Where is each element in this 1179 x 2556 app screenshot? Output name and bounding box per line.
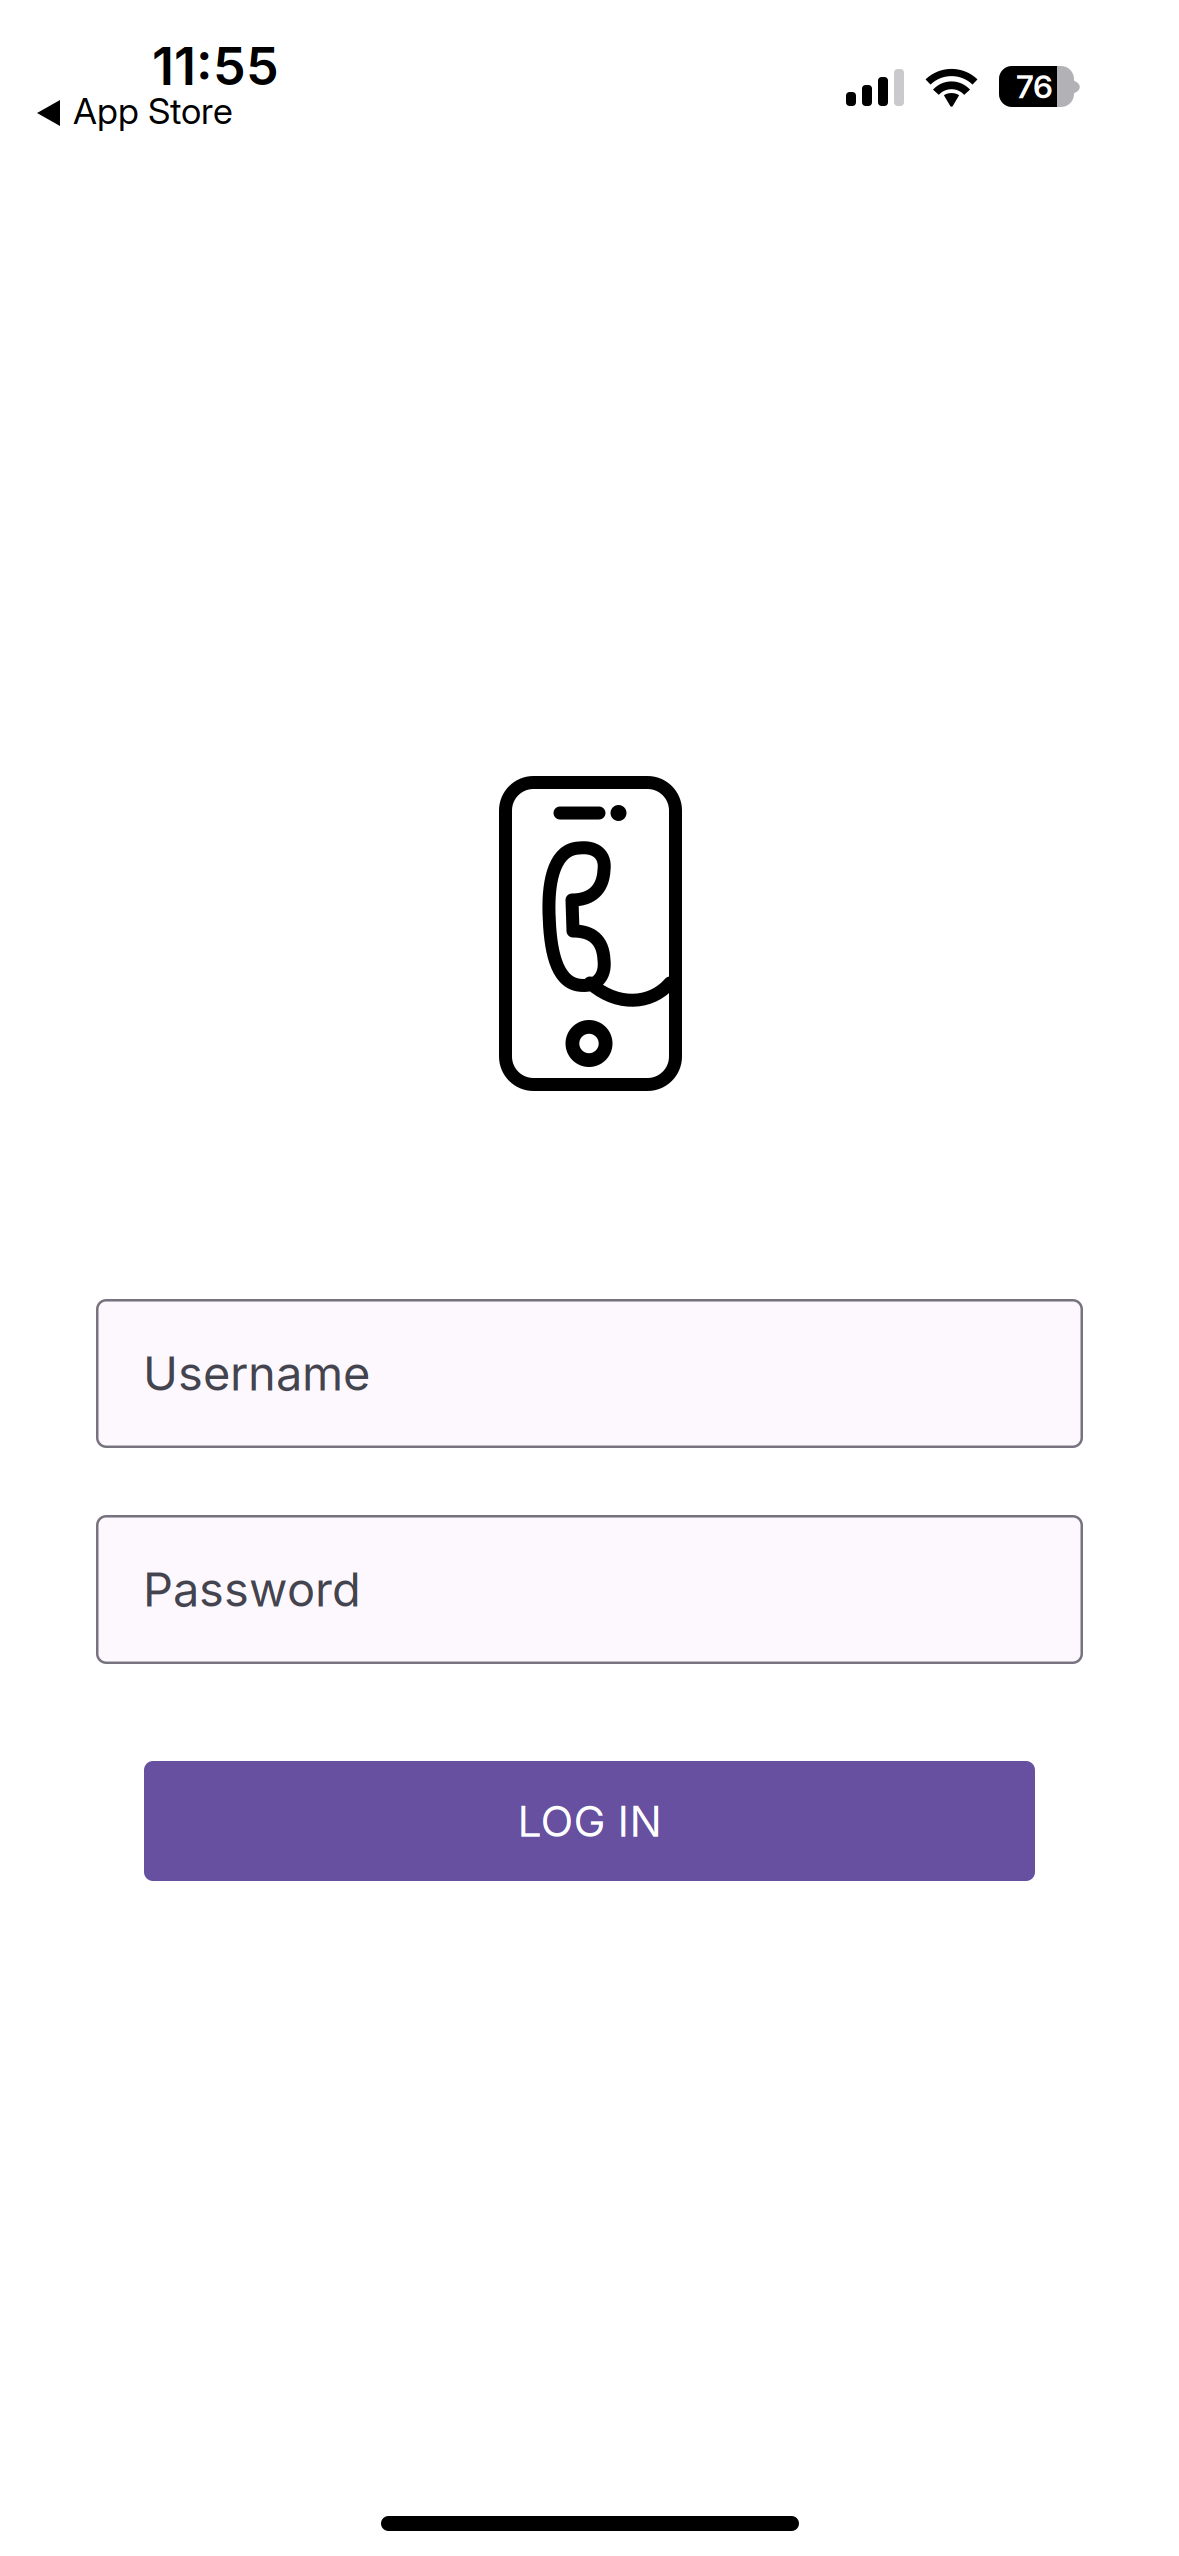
button[interactable]: Username bbox=[96, 1299, 1083, 1448]
button[interactable]: LOG IN bbox=[144, 1761, 1035, 1881]
button[interactable]: App Store bbox=[37, 93, 357, 129]
staticText: Username bbox=[143, 1345, 370, 1402]
staticText: LOG IN bbox=[517, 1795, 661, 1847]
staticText: 76 bbox=[1016, 67, 1053, 106]
staticText: Password bbox=[143, 1561, 361, 1618]
staticText: 11:55 bbox=[152, 34, 279, 97]
staticText: App Store bbox=[73, 89, 233, 133]
button[interactable]: Password bbox=[96, 1515, 1083, 1664]
